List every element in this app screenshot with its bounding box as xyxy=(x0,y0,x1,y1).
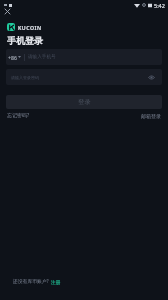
staticText: KUCOIN xyxy=(18,24,42,31)
button[interactable]: Show password xyxy=(146,72,156,82)
button[interactable]: +86 xyxy=(6,49,162,65)
staticText: 5:42 xyxy=(154,2,165,9)
staticText: 手机登录 xyxy=(7,35,43,46)
button[interactable]: Close xyxy=(2,6,13,17)
button[interactable]: 注册 xyxy=(51,279,61,285)
staticText: 登录 xyxy=(78,98,91,106)
staticText: 还没有库币账户? xyxy=(13,278,49,285)
staticText: 请输入登录密码 xyxy=(11,75,39,80)
button[interactable]: 登录 xyxy=(6,95,162,109)
button[interactable]: 忘记密码? xyxy=(7,112,30,119)
button[interactable]: 请输入登录密码 xyxy=(6,69,162,85)
staticText: 请输入手机号 xyxy=(28,54,56,60)
button[interactable]: 邮箱登录 xyxy=(141,113,161,119)
staticText: +86 xyxy=(8,54,17,61)
